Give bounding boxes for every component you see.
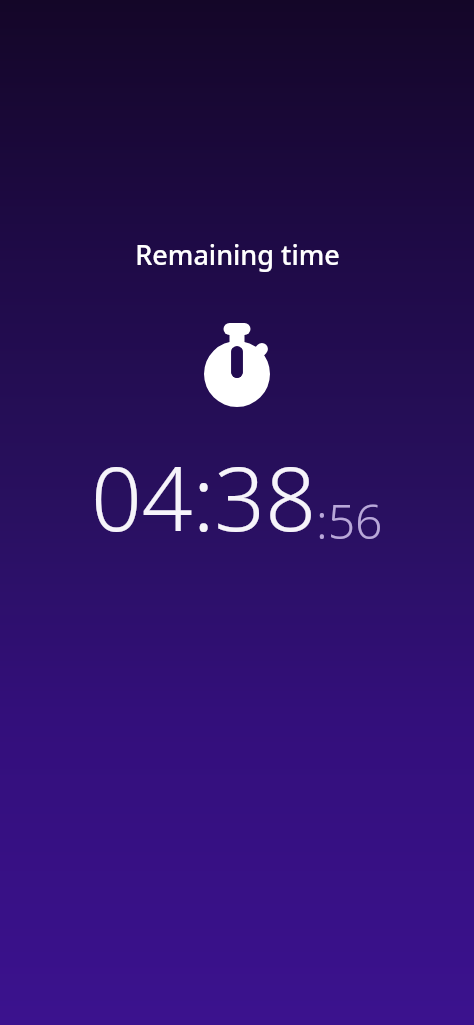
staticText: :56 [316,488,383,553]
button[interactable]: Remaining time [135,236,340,273]
staticText: 04:38 [91,436,316,557]
button[interactable]: Stopwatch [197,322,277,410]
staticText: Remaining time [135,236,340,273]
button[interactable]: 04:38 [91,436,383,557]
